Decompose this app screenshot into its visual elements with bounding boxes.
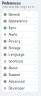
staticText: Language	[8, 53, 24, 57]
button[interactable]: About	[2, 65, 38, 72]
button[interactable]: Shortcuts	[2, 58, 38, 65]
button[interactable]: Appearance	[2, 18, 38, 25]
staticText: Privacy	[8, 39, 20, 43]
button[interactable]: Storage	[2, 45, 38, 51]
button[interactable]: Language	[2, 51, 38, 58]
staticText: Advanced	[8, 79, 24, 83]
staticText: Customize how things work	[2, 6, 34, 9]
staticText: Storage	[8, 46, 20, 50]
staticText: Shortcuts	[8, 59, 23, 63]
button[interactable]: Support	[2, 72, 38, 78]
button[interactable]: General	[2, 11, 38, 18]
staticText: About	[8, 66, 17, 70]
staticText: Developer	[8, 86, 24, 90]
button[interactable]: Advanced	[2, 78, 38, 85]
staticText: General	[8, 12, 20, 16]
button[interactable]: Privacy	[2, 38, 38, 45]
button[interactable]: Alerts	[2, 31, 38, 38]
staticText: Appearance	[8, 19, 27, 23]
button[interactable]: Sync	[2, 25, 38, 31]
staticText: Sync	[8, 26, 16, 30]
staticText: Alerts	[8, 33, 17, 36]
staticText: Support	[8, 73, 20, 77]
staticText: Preferences	[2, 1, 21, 5]
button[interactable]: Developer	[2, 85, 38, 92]
